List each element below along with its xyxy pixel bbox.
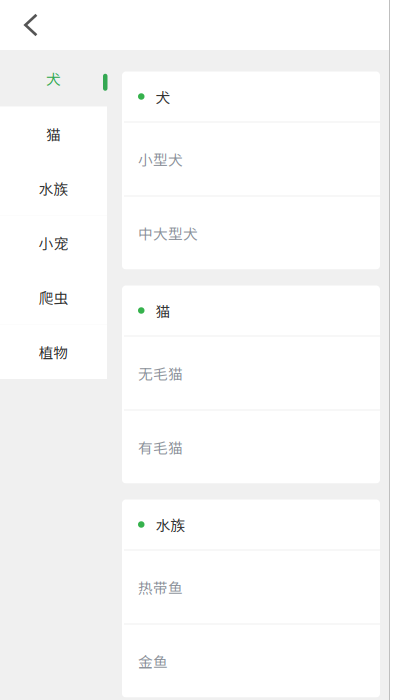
button[interactable]: 小宠 [0,215,107,270]
staticText: 中大型犬 [138,222,198,244]
button[interactable]: 犬 [122,71,380,121]
button[interactable]: 有毛猫 [122,410,380,483]
staticText: 猫 [46,123,61,144]
button[interactable]: 爬虫 [0,270,107,324]
staticText: 植物 [38,341,68,362]
staticText: 热带鱼 [138,576,183,598]
button[interactable]: Back [0,0,56,50]
staticText: 水族 [38,178,68,199]
button[interactable]: 金鱼 [122,624,380,697]
staticText: 小宠 [38,232,68,253]
staticText: 金鱼 [138,650,168,672]
button[interactable]: 水族 [122,499,380,549]
staticText: 水族 [155,514,185,535]
button[interactable]: 小型犬 [122,122,380,195]
staticText: 无毛猫 [138,362,183,384]
staticText: 犬 [155,86,170,107]
button[interactable]: 热带鱼 [122,550,380,623]
button[interactable]: 中大型犬 [122,196,380,269]
staticText: 有毛猫 [138,436,183,458]
button[interactable]: 植物 [0,324,107,379]
staticText: 爬虫 [38,287,68,308]
staticText: 小型犬 [138,148,183,170]
staticText: 猫 [155,300,170,321]
staticText: 犬 [46,68,61,89]
button[interactable]: 水族 [0,161,107,215]
button[interactable]: 猫 [0,106,107,161]
button[interactable]: 无毛猫 [122,336,380,409]
button[interactable]: 犬 [0,50,107,106]
button[interactable]: 猫 [122,285,380,335]
